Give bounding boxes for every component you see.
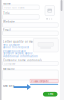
staticText: Additional information: [3, 54, 38, 58]
staticText: Title: [3, 12, 10, 15]
staticText: Email: [3, 28, 11, 32]
staticText: Company name (optional): [3, 59, 42, 62]
staticText: Letter quality or mood: [3, 40, 37, 43]
button[interactable]: Upload photo: [45, 6, 54, 16]
button[interactable]: Send: [43, 92, 57, 96]
staticText: Please complete: [31, 80, 48, 83]
staticText: Next step: [3, 84, 15, 88]
staticText: Send: [48, 93, 53, 96]
staticText: Terms of service apply: [3, 52, 32, 55]
staticText: Privacy policy and: [3, 50, 26, 53]
staticText: Website: [3, 20, 15, 23]
staticText: Name: [3, 2, 11, 5]
staticText: Tell us more: [3, 43, 20, 47]
staticText: Your full name: [4, 6, 25, 9]
staticText: about this request: [3, 46, 29, 49]
staticText: Company: [4, 62, 15, 65]
staticText: Message: [3, 67, 15, 71]
